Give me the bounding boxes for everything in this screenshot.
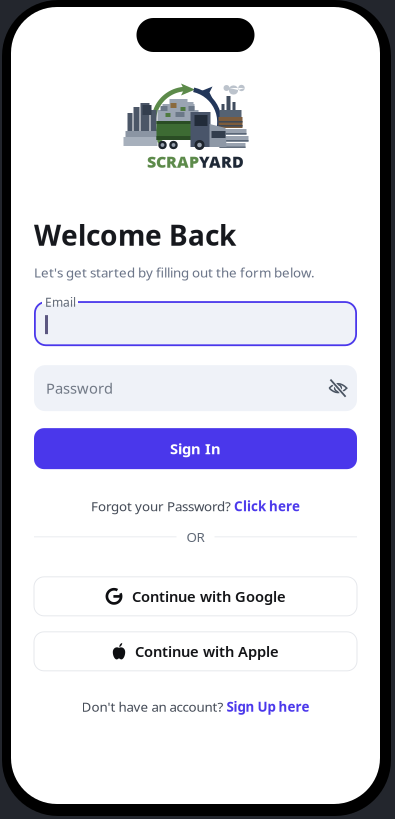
button[interactable]: Continue with Apple [34,632,357,671]
button[interactable]: Email [34,301,357,346]
button[interactable]: Sign In [34,428,357,469]
button[interactable]: Click here [234,497,300,515]
staticText: Email [45,294,76,310]
staticText: YARD [199,151,244,172]
staticText: Click here [234,497,300,515]
staticText: Password [46,378,113,398]
staticText: Continue with Google [132,587,286,606]
staticText: Forgot your Password? [91,497,234,515]
staticText: SCRAP [147,151,199,172]
staticText: Let's get started by filling out the for… [34,263,315,281]
staticText: Sign Up here [226,698,309,715]
button[interactable]: Show password [328,378,348,398]
staticText: OR [186,528,204,546]
staticText: Welcome Back [34,216,236,253]
button[interactable]: Sign Up here [226,698,309,715]
staticText: Don't have an account? [81,698,226,715]
staticText: Continue with Apple [135,642,279,661]
button[interactable]: Continue with Google [34,577,357,616]
staticText: Sign In [170,439,221,458]
